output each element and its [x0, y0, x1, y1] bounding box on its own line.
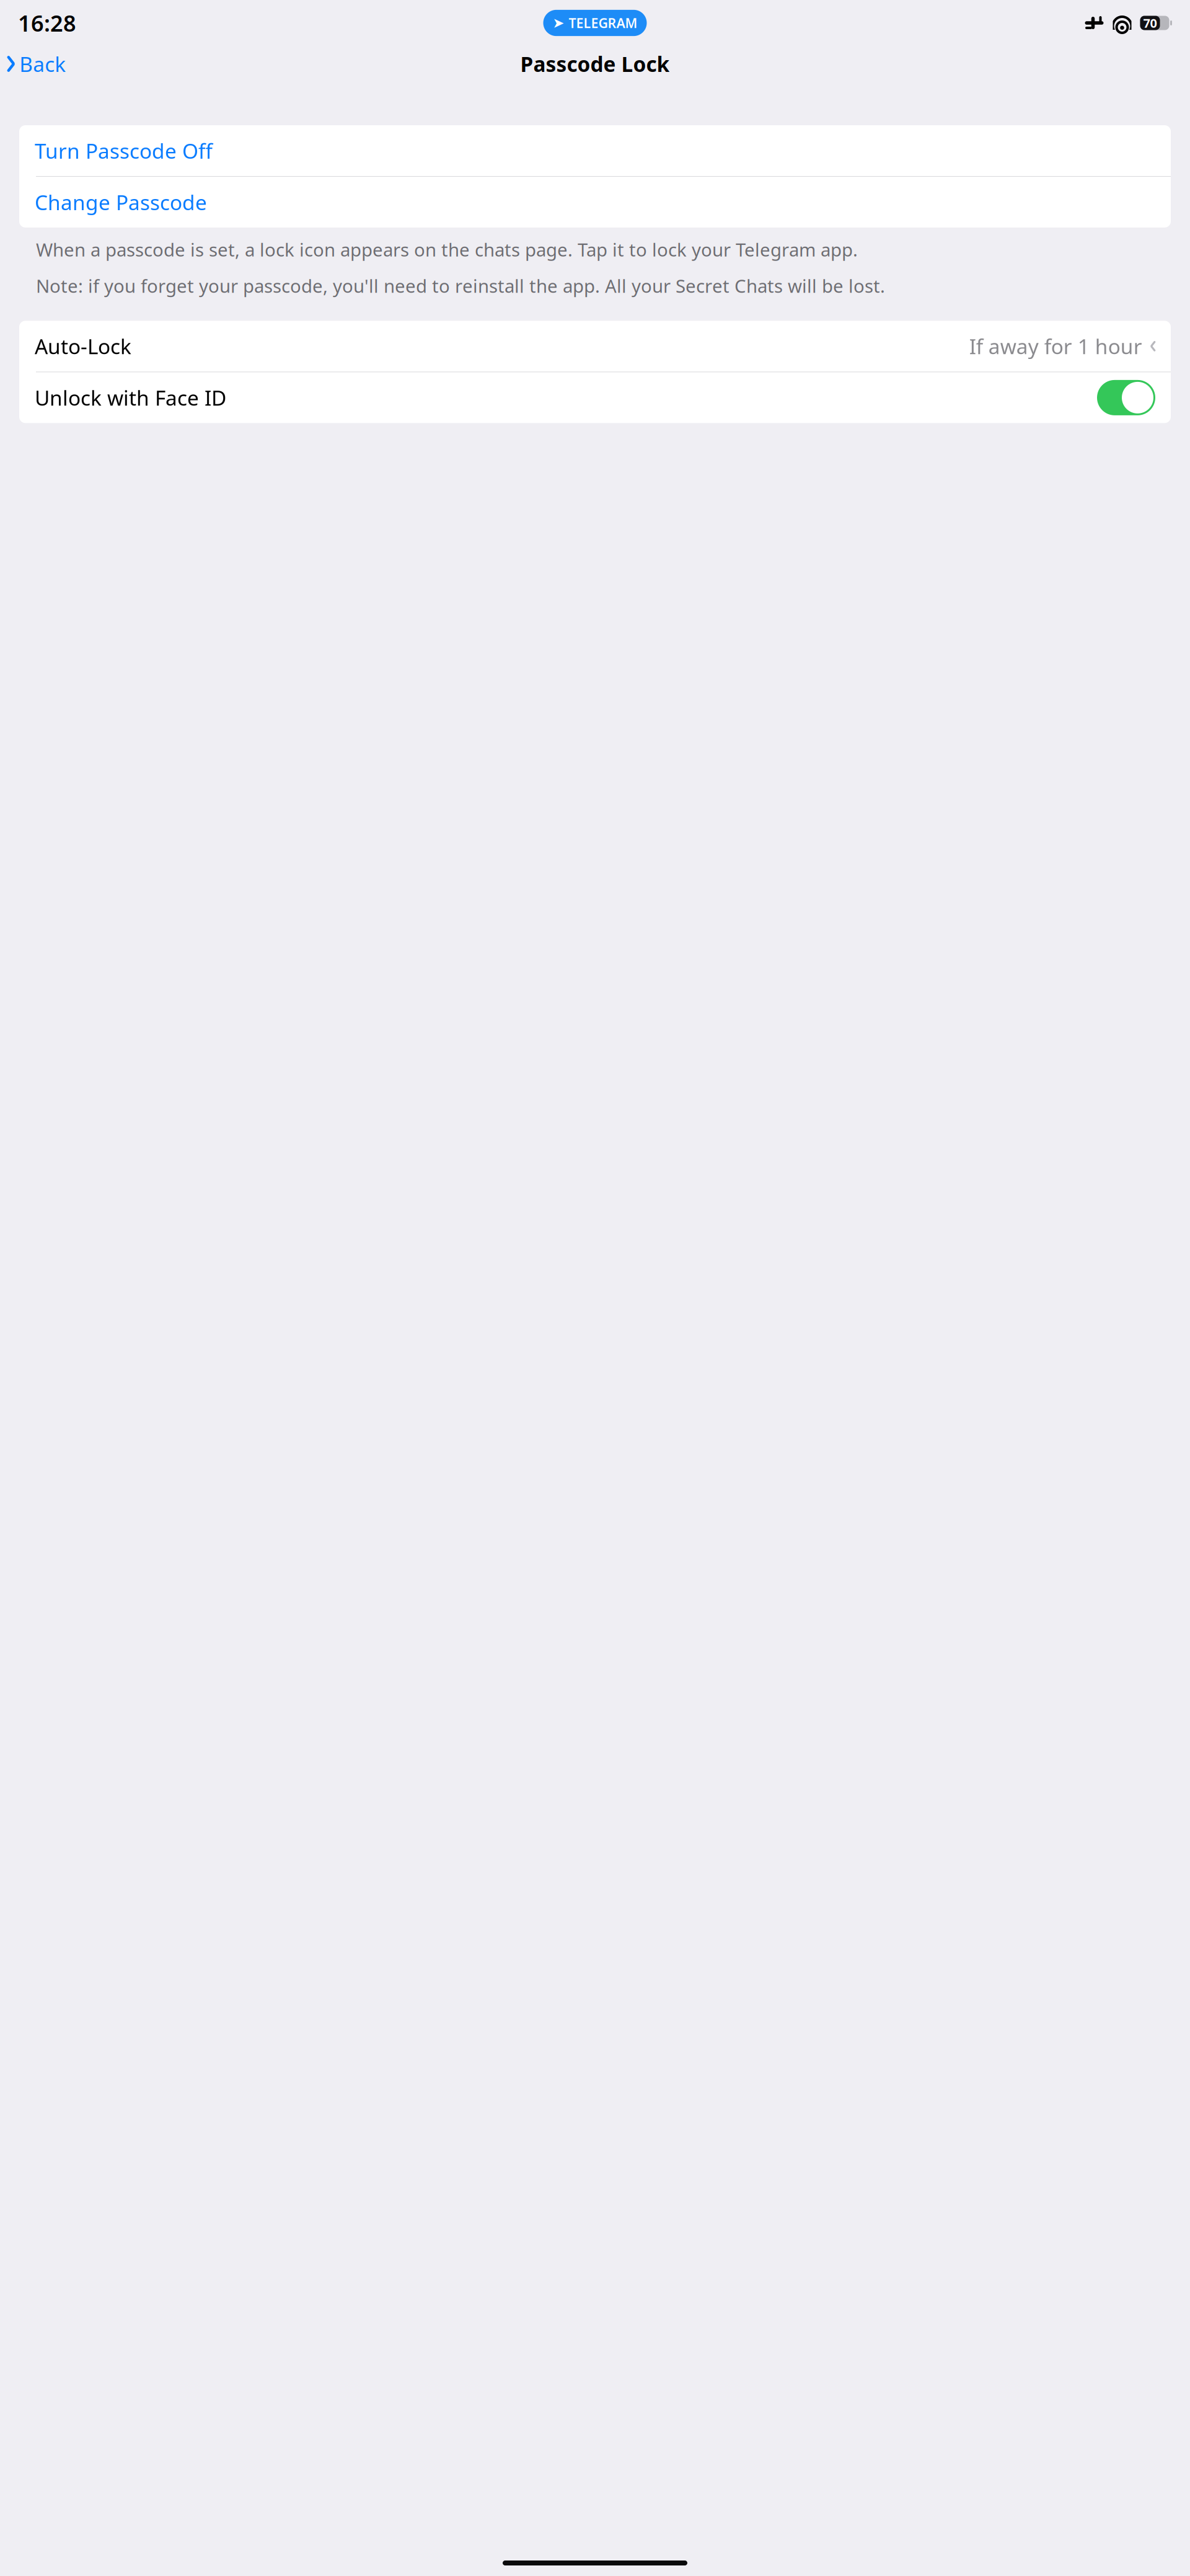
staticText: Note: if you forget your passcode, you'l… — [36, 274, 885, 298]
staticText: Passcode Lock — [520, 50, 670, 78]
button[interactable]: Change Passcode — [19, 177, 1171, 228]
staticText: If away for 1 hour — [969, 332, 1142, 360]
staticText: 16:28 — [18, 8, 76, 38]
staticText: When a passcode is set, a lock icon appe… — [36, 237, 858, 262]
staticText: Turn Passcode Off — [35, 137, 213, 164]
staticText: Change Passcode — [35, 188, 207, 216]
staticText: TELEGRAM — [569, 14, 637, 32]
staticText: Back — [19, 50, 66, 78]
staticText: Unlock with Face ID — [35, 384, 226, 411]
staticText: 70 — [1143, 15, 1157, 31]
button[interactable]: Back — [5, 44, 68, 84]
staticText: Auto-Lock — [35, 332, 131, 360]
button[interactable]: Auto-Lock — [19, 321, 1171, 372]
staticText: ➤ — [553, 15, 564, 31]
button[interactable]: Turn Passcode Off — [19, 125, 1171, 176]
button[interactable]: Unlock with Face ID — [19, 372, 1171, 423]
